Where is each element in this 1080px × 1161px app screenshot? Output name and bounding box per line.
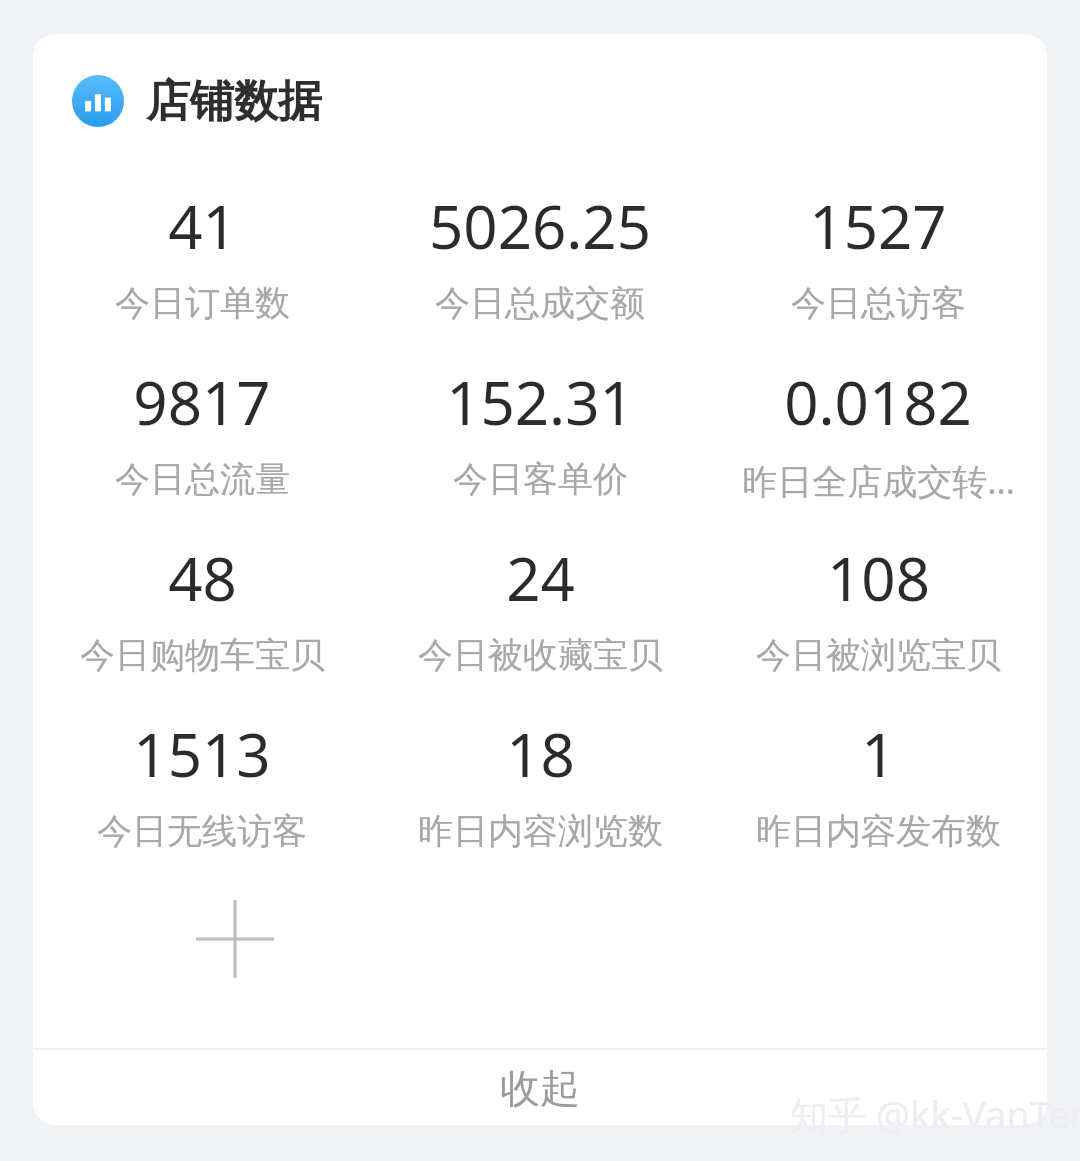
staticText: 24	[506, 537, 575, 619]
staticText: 1513	[133, 713, 271, 795]
staticText: 41	[168, 185, 237, 267]
button[interactable]: 9817	[33, 344, 371, 520]
staticText: 18	[506, 713, 575, 795]
staticText: 店铺数据	[146, 74, 322, 129]
staticText: 知乎 @kk-VanTen	[790, 1088, 1080, 1140]
button[interactable]: 店铺数据图标	[33, 34, 1047, 168]
staticText: 今日无线访客	[97, 809, 307, 853]
staticText: 昨日全店成交转…	[742, 457, 1015, 505]
staticText: 今日总访客	[791, 281, 966, 325]
button[interactable]: 5026.25	[371, 168, 709, 344]
staticText: 0.0182	[784, 361, 972, 443]
staticText: 1527	[809, 185, 947, 267]
button[interactable]: 152.31	[371, 344, 709, 520]
staticText: 昨日内容浏览数	[418, 809, 663, 853]
staticText: 1	[861, 713, 896, 795]
staticText: 今日被收藏宝贝	[418, 633, 663, 677]
button[interactable]: 0.0182	[709, 344, 1047, 520]
staticText: 今日总成交额	[435, 281, 645, 325]
staticText: 48	[168, 537, 237, 619]
button[interactable]: 48	[33, 520, 371, 696]
staticText: 收起	[500, 1063, 580, 1113]
staticText: 152.31	[446, 361, 634, 443]
staticText: 9817	[133, 361, 271, 443]
button[interactable]: 收起	[33, 1050, 1047, 1125]
button[interactable]: 108	[709, 520, 1047, 696]
button[interactable]: 24	[371, 520, 709, 696]
button[interactable]: 1527	[709, 168, 1047, 344]
staticText: 今日被浏览宝贝	[756, 633, 1001, 677]
button[interactable]: 18	[371, 696, 709, 872]
staticText: 今日总流量	[115, 457, 290, 501]
button[interactable]: 41	[33, 168, 371, 344]
button[interactable]: 添加数据	[168, 872, 302, 1006]
staticText: 今日购物车宝贝	[80, 633, 325, 677]
staticText: 5026.25	[429, 185, 651, 267]
button[interactable]: 1	[709, 696, 1047, 872]
other: 店铺数据图标	[72, 75, 124, 127]
staticText: 今日客单价	[453, 457, 628, 501]
staticText: 昨日内容发布数	[756, 809, 1001, 853]
staticText: 今日订单数	[115, 281, 290, 325]
staticText: 108	[827, 537, 930, 619]
button[interactable]: 1513	[33, 696, 371, 872]
